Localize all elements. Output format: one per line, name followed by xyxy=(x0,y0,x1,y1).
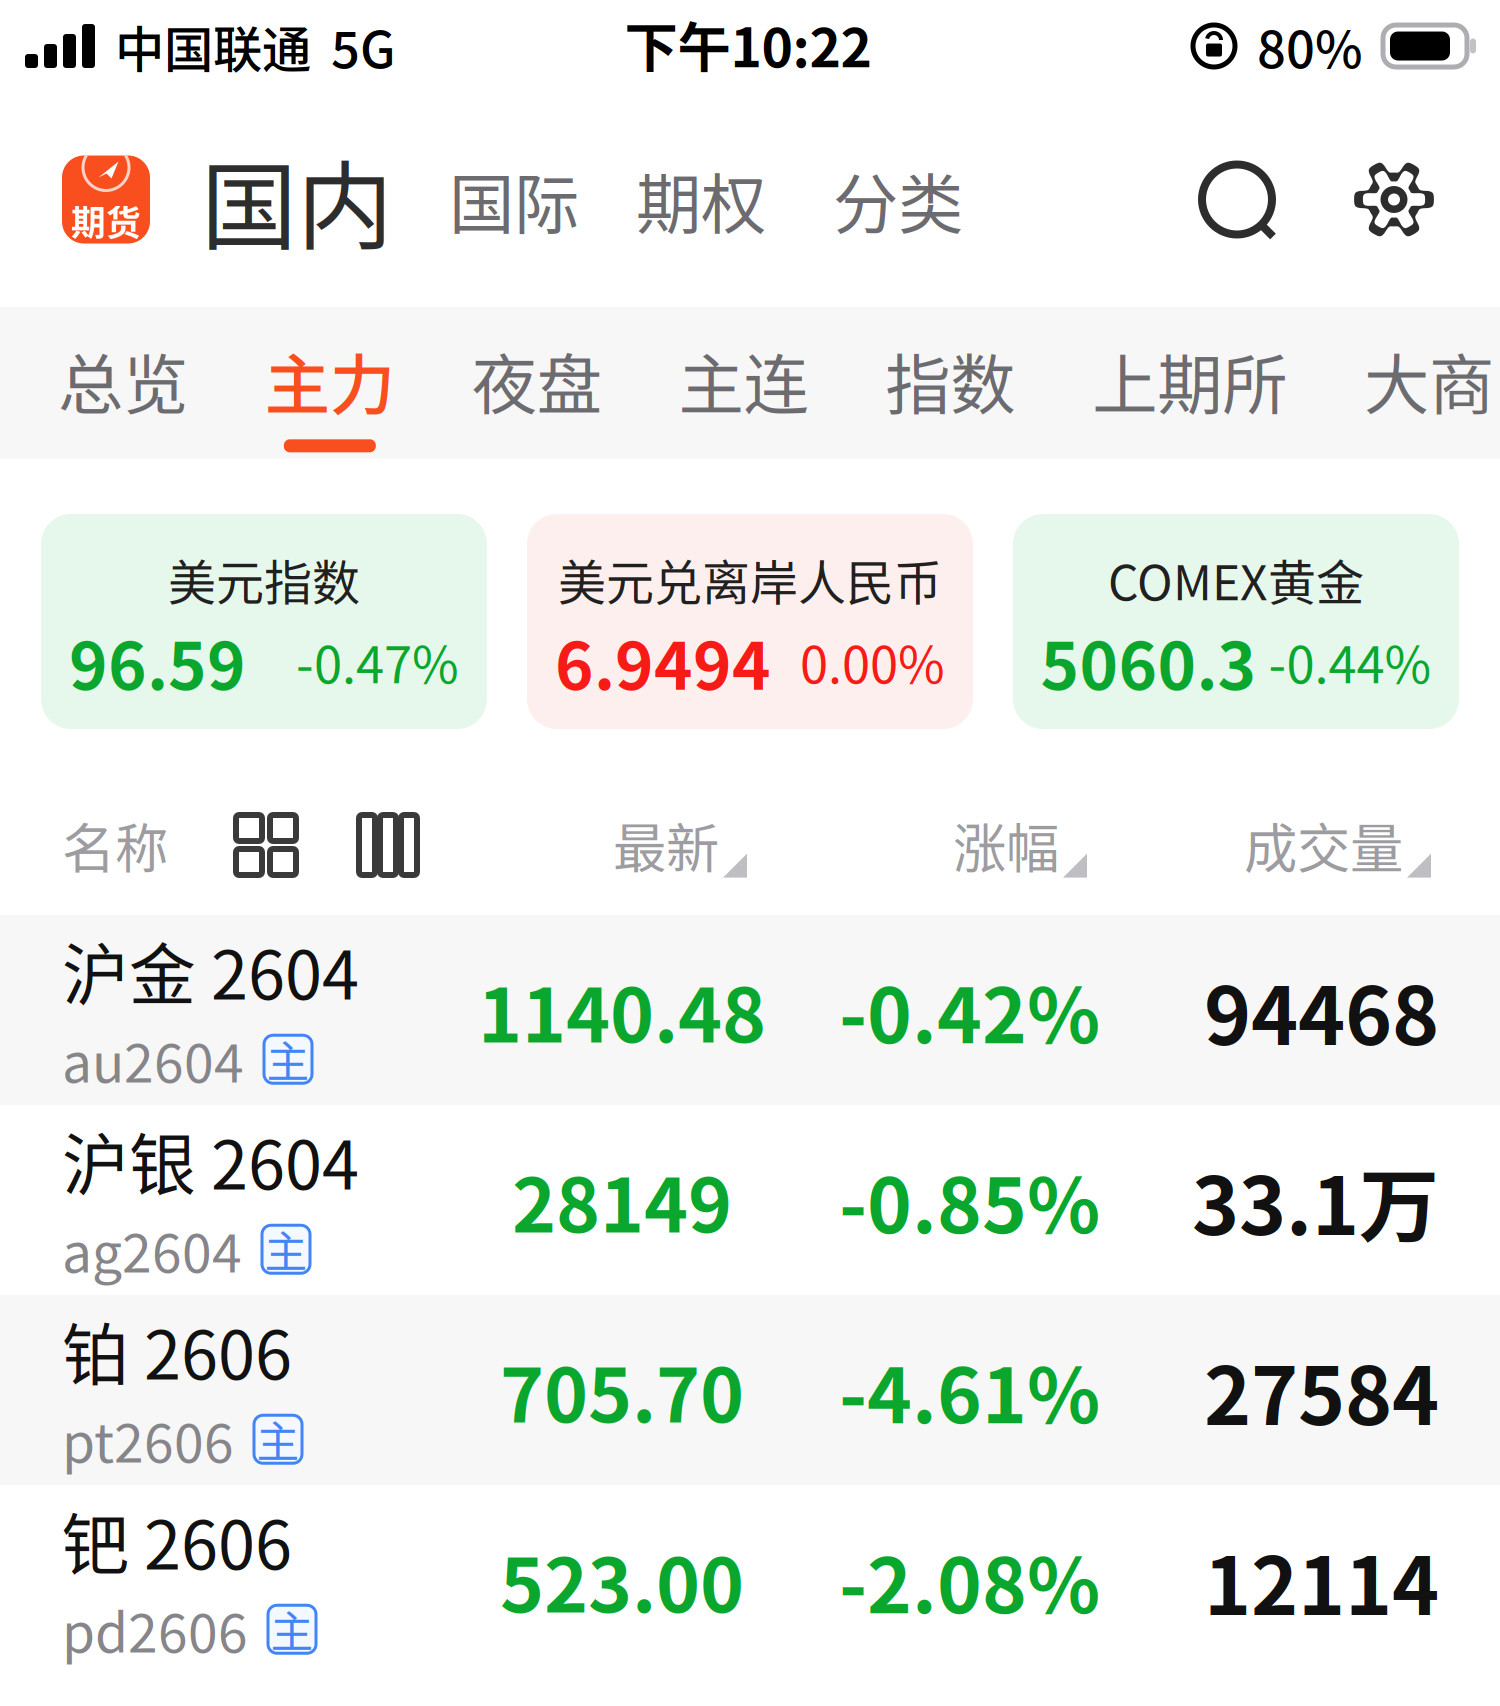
button[interactable]: 设置 xyxy=(1276,159,1433,239)
staticText: 期权 xyxy=(636,152,766,247)
staticText: 指数 xyxy=(885,333,1015,427)
staticText: 主 xyxy=(266,1028,309,1090)
button[interactable]: 主力 xyxy=(265,291,395,475)
button[interactable]: 最新 xyxy=(613,788,747,902)
button[interactable]: 分类 xyxy=(766,126,963,273)
staticText: 上期所 xyxy=(1092,333,1287,427)
staticText: 沪金 2604 xyxy=(62,922,359,1019)
staticText: -0.47% xyxy=(296,625,459,698)
staticText: 分类 xyxy=(833,152,963,247)
button[interactable]: 上期所 xyxy=(1092,291,1287,475)
staticText: 下午10:22 xyxy=(624,5,871,83)
staticText: 27584 xyxy=(1204,1332,1439,1448)
button[interactable]: 钯 2606 xyxy=(0,1485,1500,1675)
button[interactable]: 夜盘 xyxy=(472,291,602,475)
staticText: 12114 xyxy=(1204,1522,1439,1638)
button[interactable]: 名称 xyxy=(62,788,168,902)
staticText: 期货 xyxy=(71,195,141,246)
button[interactable]: 大商 xyxy=(1364,291,1494,475)
staticText: pt2606 xyxy=(62,1401,234,1478)
staticText: 沪银 2604 xyxy=(62,1112,359,1209)
button[interactable]: 图表视图 xyxy=(296,797,417,893)
staticText: 28149 xyxy=(512,1146,732,1254)
staticText: 名称 xyxy=(62,806,168,884)
staticText: -0.42% xyxy=(839,955,1100,1065)
button[interactable]: COMEX黄金 xyxy=(1013,514,1459,729)
staticText: 523.00 xyxy=(500,1526,744,1634)
staticText: 涨幅 xyxy=(953,806,1059,884)
staticText: 总览 xyxy=(58,333,188,427)
staticText: 1140.48 xyxy=(478,956,766,1064)
staticText: ag2604 xyxy=(62,1211,242,1288)
staticText: 705.70 xyxy=(500,1336,744,1444)
staticText: 大商 xyxy=(1364,333,1494,427)
button[interactable]: 期权 xyxy=(579,126,766,273)
button[interactable]: 期货 App xyxy=(62,155,150,243)
staticText: COMEX黄金 xyxy=(1108,544,1364,614)
button[interactable]: 主连 xyxy=(678,291,808,475)
button[interactable]: 铂 2606 xyxy=(0,1295,1500,1485)
staticText: 主 xyxy=(256,1408,299,1470)
button[interactable]: 国际 xyxy=(393,126,579,273)
staticText: 国内 xyxy=(201,130,393,269)
staticText: 96.59 xyxy=(69,614,246,709)
staticText: 国际 xyxy=(449,152,579,247)
staticText: -2.08% xyxy=(839,1525,1100,1635)
staticText: au2604 xyxy=(62,1021,244,1098)
staticText: 33.1万 xyxy=(1192,1142,1439,1258)
button[interactable]: 搜索 xyxy=(1198,159,1276,239)
button[interactable]: 成交量 xyxy=(1244,788,1431,902)
button[interactable]: 美元指数 xyxy=(41,514,487,729)
staticText: 铂 2606 xyxy=(62,1302,292,1399)
button[interactable]: 国内 xyxy=(150,108,393,291)
button[interactable]: 涨幅 xyxy=(953,788,1087,902)
button[interactable]: 总览 xyxy=(58,291,188,475)
button[interactable]: 沪金 2604 xyxy=(0,915,1500,1105)
staticText: 94468 xyxy=(1204,952,1439,1068)
staticText: 成交量 xyxy=(1244,806,1403,884)
staticText: 中国联通 xyxy=(115,10,311,82)
staticText: 钯 2606 xyxy=(62,1492,292,1589)
staticText: 5060.3 xyxy=(1040,614,1256,709)
staticText: 主 xyxy=(270,1598,313,1660)
staticText: -0.44% xyxy=(1268,625,1431,698)
staticText: 0.00% xyxy=(800,625,945,698)
staticText: 主力 xyxy=(265,333,395,427)
button[interactable]: 美元兑离岸人民币 xyxy=(527,514,973,729)
staticText: -0.85% xyxy=(839,1145,1100,1255)
staticText: 夜盘 xyxy=(472,333,602,427)
staticText: 主连 xyxy=(678,333,808,427)
staticText: 主 xyxy=(264,1218,307,1280)
button[interactable]: 网格视图 xyxy=(168,797,296,893)
staticText: 美元兑离岸人民币 xyxy=(558,544,942,614)
button[interactable]: 沪银 2604 xyxy=(0,1105,1500,1295)
staticText: 最新 xyxy=(613,806,719,884)
staticText: 6.9494 xyxy=(555,614,771,709)
staticText: 80% xyxy=(1257,9,1363,83)
staticText: 5G xyxy=(331,9,396,83)
staticText: -4.61% xyxy=(839,1335,1100,1445)
staticText: pd2606 xyxy=(62,1591,248,1668)
button[interactable]: 指数 xyxy=(885,291,1015,475)
staticText: 美元指数 xyxy=(168,544,360,614)
